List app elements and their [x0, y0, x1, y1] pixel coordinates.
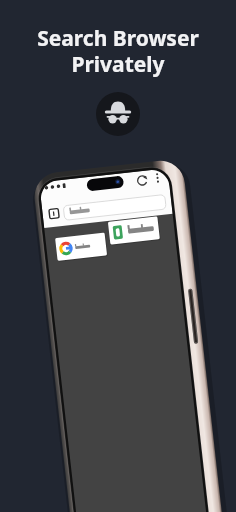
- staticText: Search Browser Privately: [0, 24, 236, 78]
- other: Private browser phone preview: [0, 0, 236, 512]
